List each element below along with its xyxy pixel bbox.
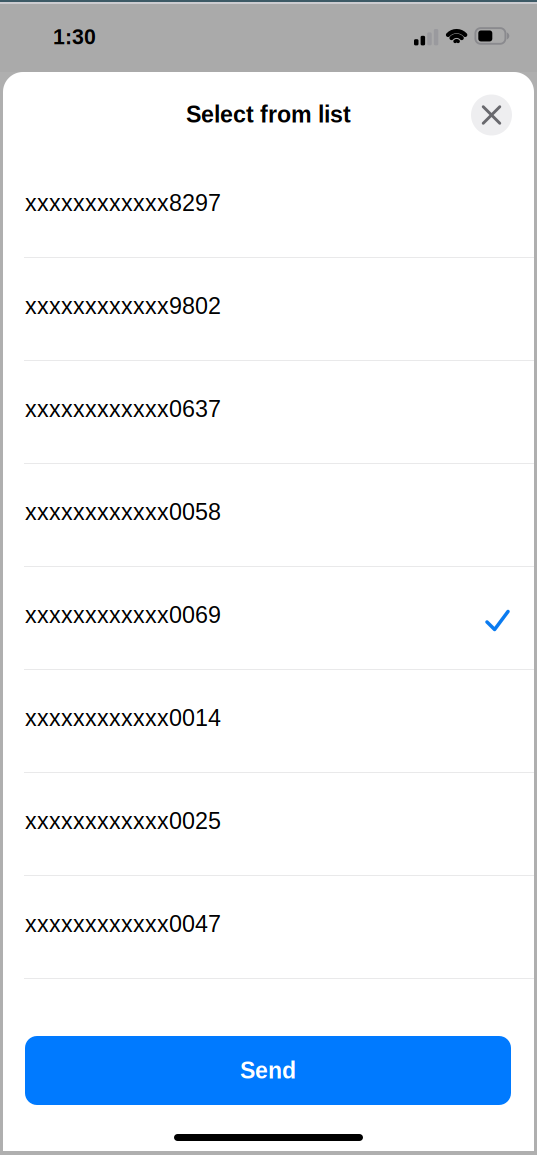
staticText: xxxxxxxxxxxx0014 xyxy=(25,705,221,731)
button[interactable]: xxxxxxxxxxxx0047 xyxy=(3,876,534,979)
button[interactable]: xxxxxxxxxxxx0025 xyxy=(3,773,534,876)
staticText: xxxxxxxxxxxx9802 xyxy=(25,293,221,319)
staticText: xxxxxxxxxxxx0069 xyxy=(25,602,221,628)
button[interactable]: xxxxxxxxxxxx0014 xyxy=(3,670,534,773)
staticText: xxxxxxxxxxxx0047 xyxy=(25,911,221,937)
staticText: Send xyxy=(240,1058,296,1083)
staticText: Select from list xyxy=(186,101,351,127)
button[interactable]: xxxxxxxxxxxx9802 xyxy=(3,258,534,361)
staticText: xxxxxxxxxxxx0637 xyxy=(25,396,221,422)
button[interactable]: Close xyxy=(471,94,512,135)
staticText: xxxxxxxxxxxx8297 xyxy=(25,190,221,216)
staticText: xxxxxxxxxxxx0058 xyxy=(25,499,221,525)
staticText: 1:30 xyxy=(53,25,96,49)
button[interactable]: Send xyxy=(25,1036,511,1105)
button[interactable]: xxxxxxxxxxxx0069 xyxy=(3,567,534,670)
button[interactable]: xxxxxxxxxxxx8297 xyxy=(3,155,534,258)
button[interactable]: xxxxxxxxxxxx0637 xyxy=(3,361,534,464)
button[interactable]: xxxxxxxxxxxx0058 xyxy=(3,464,534,567)
staticText: xxxxxxxxxxxx0025 xyxy=(25,808,221,834)
